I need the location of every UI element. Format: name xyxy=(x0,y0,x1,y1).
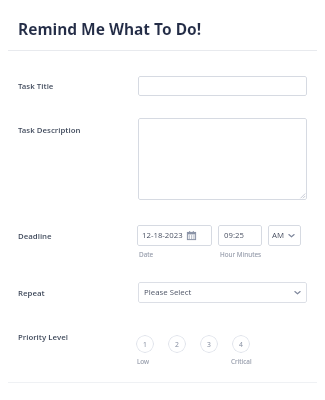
button[interactable]: 2 xyxy=(168,335,186,353)
staticText: Task Description xyxy=(18,125,81,136)
staticText: 09:25 xyxy=(224,230,244,241)
staticText: 1 xyxy=(143,340,147,349)
button[interactable]: AM xyxy=(268,225,301,246)
other: Open dropdown xyxy=(288,232,295,239)
button[interactable]: 12-18-2023 xyxy=(137,225,212,246)
staticText: Critical xyxy=(231,357,252,366)
button[interactable]: 3 xyxy=(200,335,218,353)
button[interactable] xyxy=(138,76,307,96)
button[interactable] xyxy=(138,118,307,200)
staticText: AM xyxy=(272,230,285,241)
staticText: Remind Me What To Do! xyxy=(18,18,202,39)
staticText: Hour Minutes xyxy=(220,250,262,259)
staticText: 3 xyxy=(207,340,211,349)
staticText: Please Select xyxy=(144,287,192,298)
staticText: Task Title xyxy=(18,81,54,92)
staticText: 4 xyxy=(239,340,243,349)
staticText: Low xyxy=(137,357,150,366)
staticText: 12-18-2023 xyxy=(142,230,183,241)
staticText: 2 xyxy=(175,340,179,349)
staticText: Priority Level xyxy=(18,332,68,343)
other: Open dropdown xyxy=(294,289,301,296)
button[interactable]: 09:25 xyxy=(218,225,262,246)
staticText: Deadline xyxy=(18,231,52,242)
button[interactable]: 4 xyxy=(232,335,250,353)
staticText: Repeat xyxy=(18,288,45,299)
button[interactable]: Please Select xyxy=(138,282,307,303)
staticText: Date xyxy=(139,250,154,259)
other: Pick date xyxy=(187,231,196,240)
button[interactable]: 1 xyxy=(136,335,154,353)
